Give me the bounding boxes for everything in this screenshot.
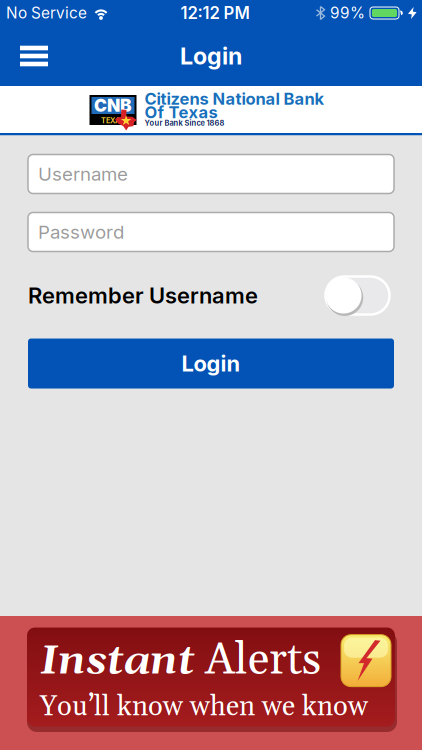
staticText: You’ll know when we know <box>40 690 368 725</box>
staticText: Your Bank Since 1868 <box>144 118 224 127</box>
button[interactable]: Login <box>28 338 394 388</box>
staticText: TEXAS <box>101 116 125 125</box>
button[interactable]: Username <box>28 154 394 193</box>
staticText: Login <box>180 42 242 70</box>
button[interactable]: Instant Alerts <box>0 616 422 750</box>
staticText: No Service <box>6 4 87 22</box>
staticText: 12:12 PM <box>180 3 249 23</box>
staticText: Password <box>38 221 124 243</box>
staticText: Of Texas <box>144 102 217 122</box>
staticText: CNB <box>94 95 132 116</box>
button[interactable] <box>0 46 48 66</box>
button[interactable]: Password <box>28 212 394 251</box>
staticText: Login <box>181 350 240 377</box>
staticText: Remember Username <box>28 282 258 309</box>
button[interactable] <box>325 275 390 315</box>
staticText: Citizens National Bank <box>144 89 324 109</box>
staticText: 99% <box>330 4 365 22</box>
staticText: Username <box>38 163 128 185</box>
staticText: Instant Alerts <box>40 633 321 688</box>
